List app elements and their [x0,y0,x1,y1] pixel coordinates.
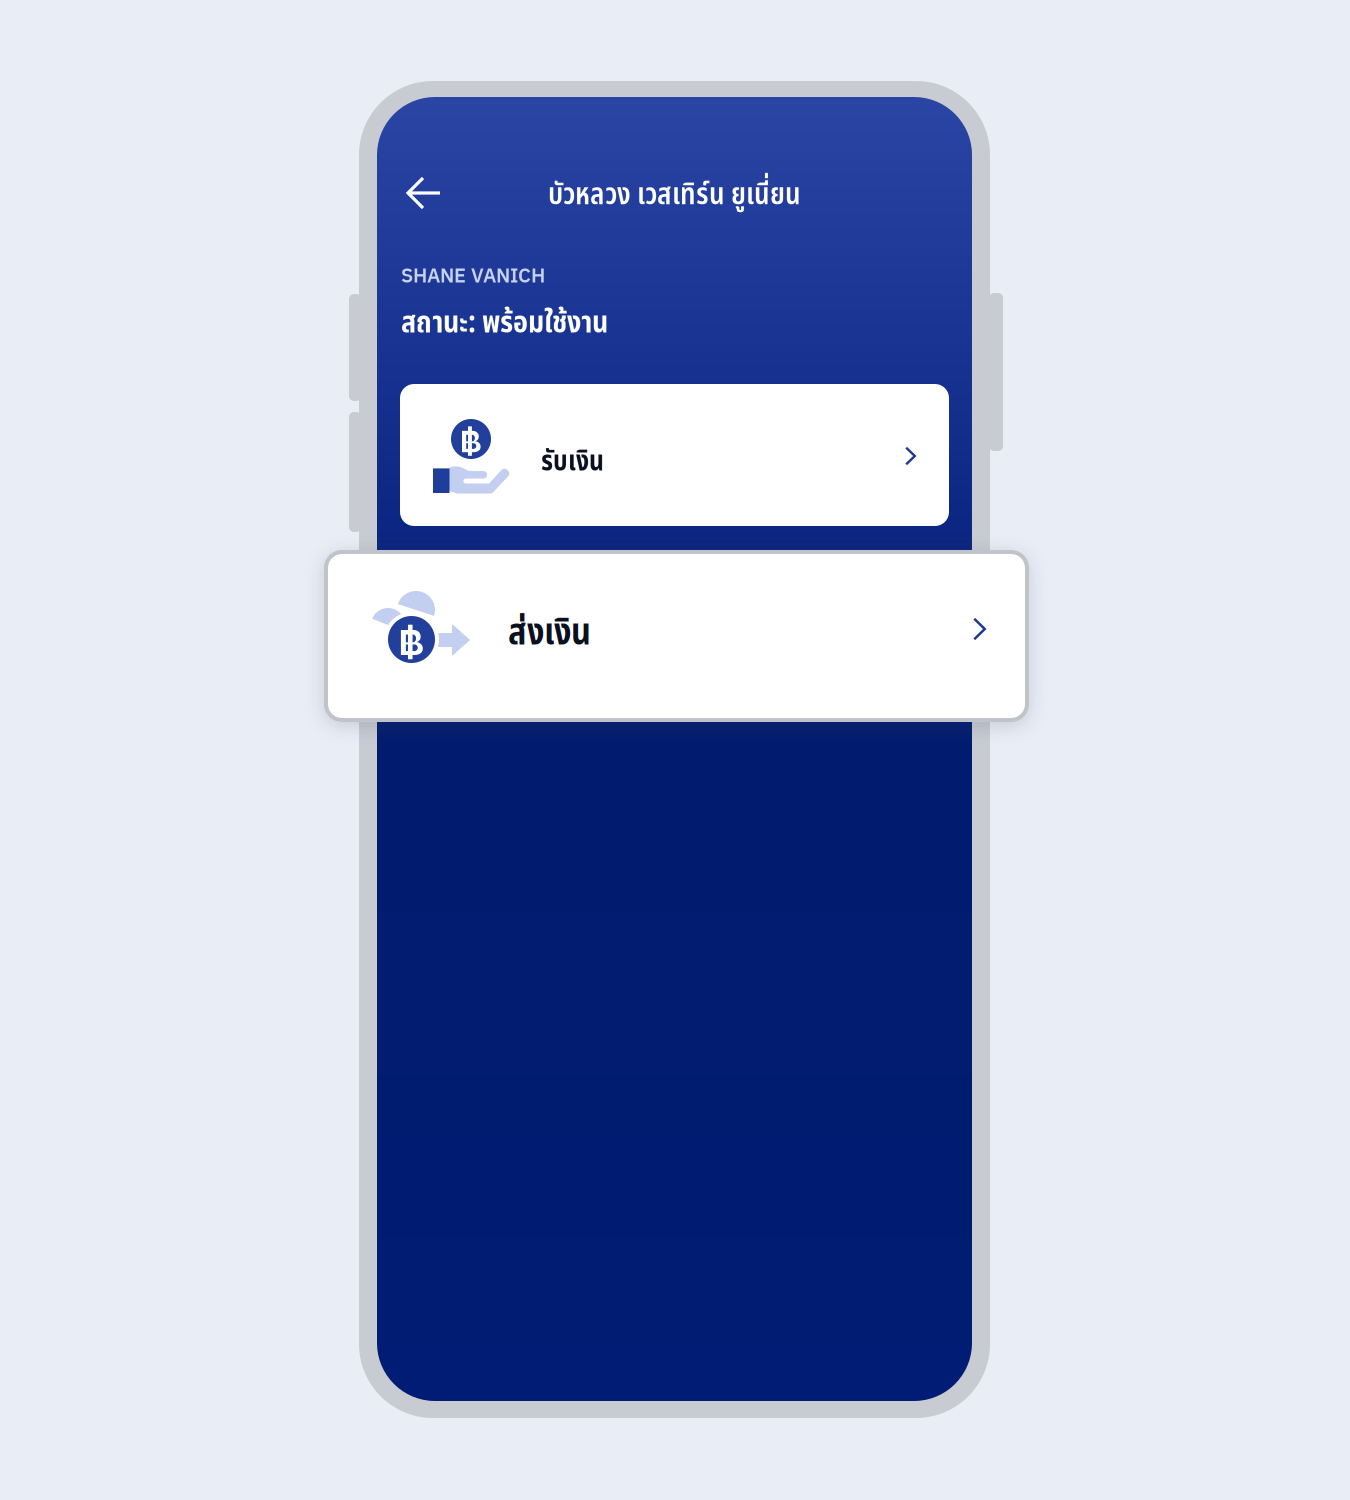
button[interactable]: ส่งเงิน [324,550,1029,722]
staticText: SHANE VANICH [401,262,545,288]
button[interactable]: Back [386,159,462,227]
staticText: บัวหลวง เวสเทิร์น ยูเนี่ยน [548,172,801,218]
button[interactable]: รับเงิน [400,384,949,526]
staticText: ส่งเงิน [508,605,591,661]
staticText: รับเงิน [541,441,604,483]
staticText: สถานะ: พร้อมใช้งาน [401,300,608,346]
